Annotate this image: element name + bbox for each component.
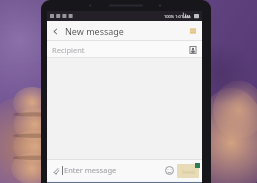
- button[interactable]: Menu: [184, 22, 202, 40]
- button[interactable]: Attach: [49, 164, 62, 177]
- staticText: Enter message: [64, 165, 163, 175]
- button[interactable]: Emoji: [163, 164, 176, 177]
- staticText: New message: [65, 25, 124, 37]
- button[interactable]: Send: [177, 163, 200, 178]
- button[interactable]: Back: [47, 23, 63, 39]
- button[interactable]: Recipient: [47, 41, 202, 58]
- staticText: Send: [182, 168, 195, 175]
- staticText: 100% 1:01 AM: [164, 14, 191, 19]
- button[interactable]: Add recipient from contacts: [187, 44, 199, 56]
- staticText: Recipient: [52, 45, 85, 55]
